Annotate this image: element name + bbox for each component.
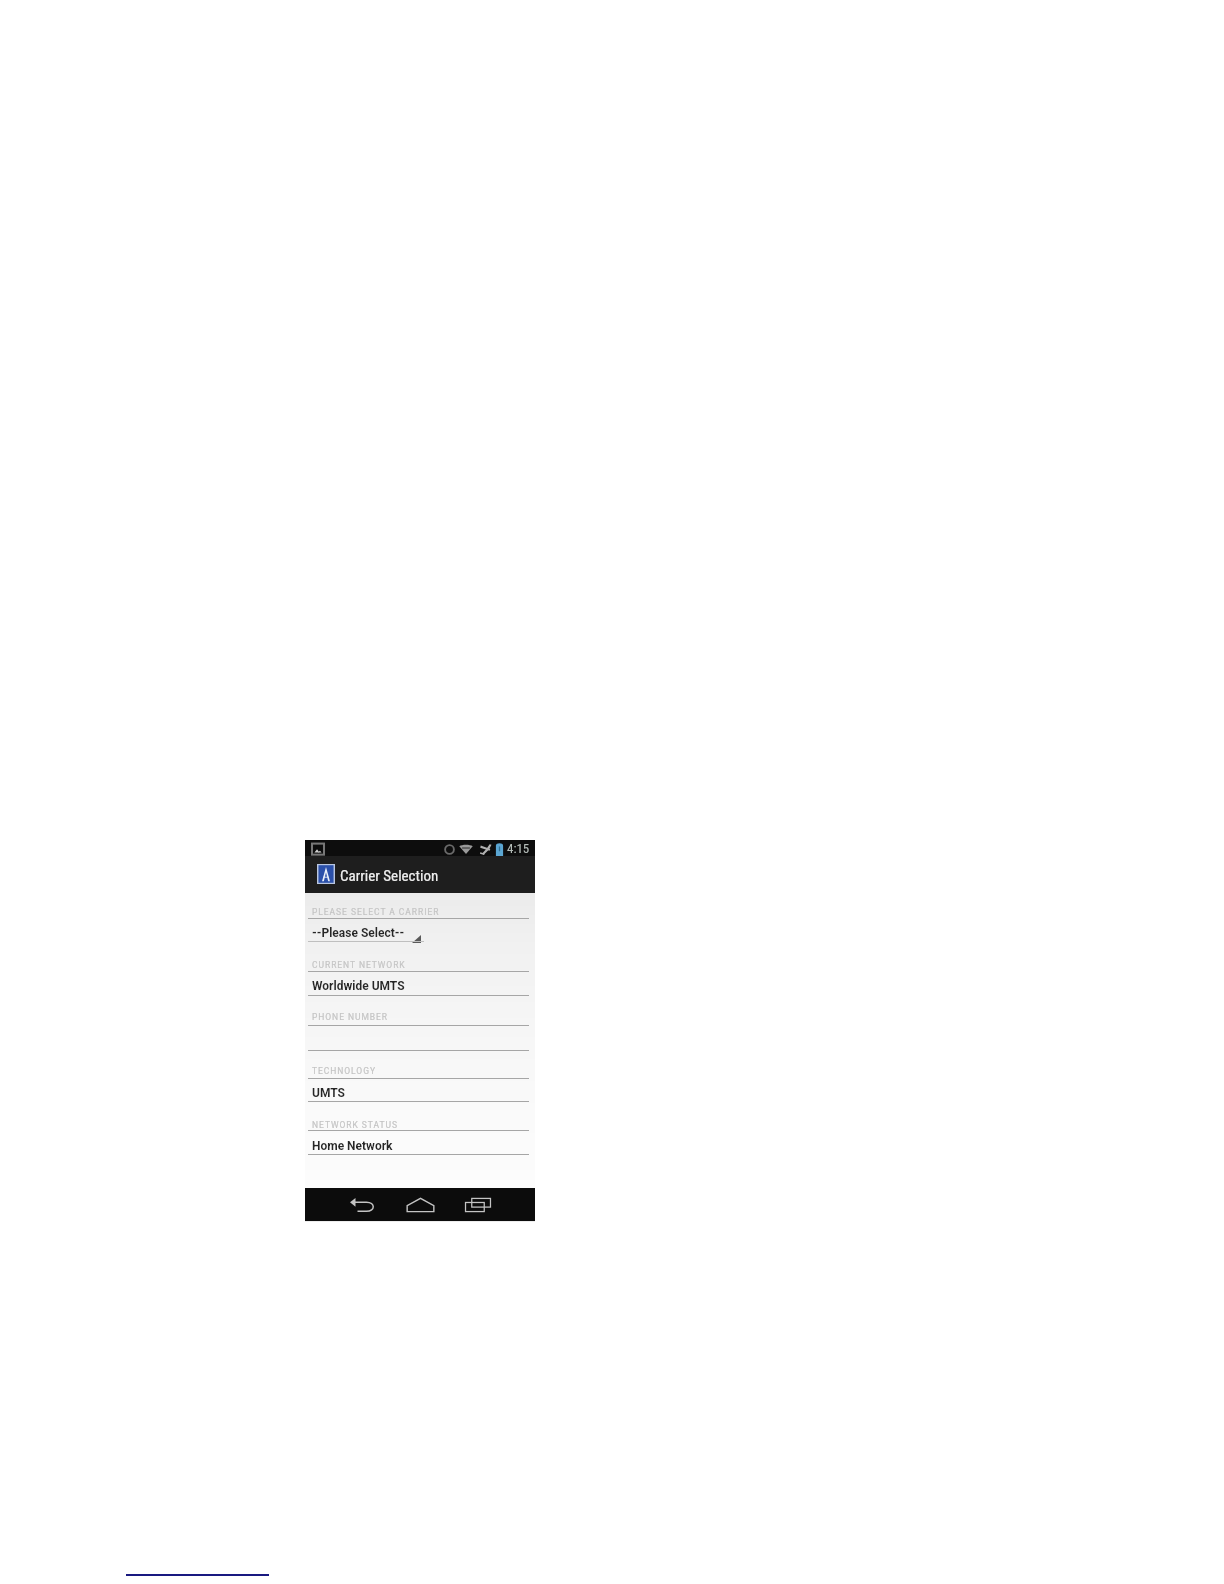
- staticText: --Please Select--: [312, 926, 405, 940]
- staticText: Worldwide UMTS: [312, 979, 405, 993]
- button[interactable]: Back: [341, 1190, 383, 1219]
- staticText: Home Network: [312, 1139, 393, 1153]
- staticText: NETWORK STATUS: [312, 1120, 398, 1130]
- staticText: 4:15: [507, 841, 530, 856]
- button[interactable]: [305, 957, 535, 1001]
- staticText: TECHNOLOGY: [312, 1066, 376, 1076]
- staticText: UMTS: [312, 1086, 345, 1100]
- button[interactable]: Recent apps: [457, 1190, 499, 1219]
- button[interactable]: [305, 1009, 535, 1056]
- other: Screenshot captured: [312, 843, 324, 855]
- button[interactable]: [305, 904, 535, 947]
- staticText: PLEASE SELECT A CARRIER: [312, 907, 440, 917]
- button[interactable]: Carrier Selection: [305, 856, 535, 893]
- staticText: PHONE NUMBER: [312, 1012, 389, 1022]
- button[interactable]: Home: [399, 1190, 441, 1219]
- button[interactable]: [305, 1117, 535, 1160]
- staticText: Carrier Selection: [340, 867, 439, 885]
- staticText: CURRENT NETWORK: [312, 960, 406, 970]
- button[interactable]: [305, 1064, 535, 1108]
